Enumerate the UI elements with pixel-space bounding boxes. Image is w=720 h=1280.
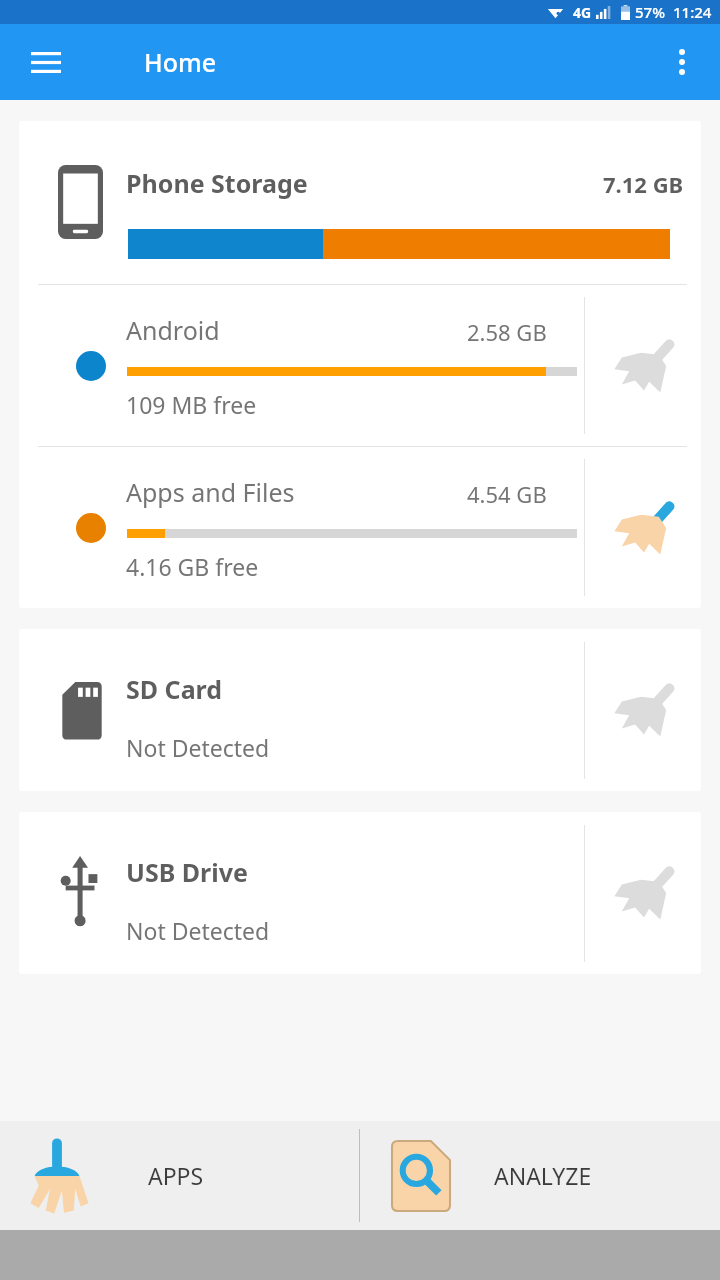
button[interactable]: Clean SD Card xyxy=(586,629,701,791)
button[interactable]: Clean Apps and Files xyxy=(586,447,701,608)
button[interactable]: APPS xyxy=(0,1121,359,1230)
staticText: USB Drive xyxy=(126,855,248,889)
staticText: 7.12 GB xyxy=(603,169,684,199)
staticText: 4G xyxy=(573,3,592,22)
staticText: APPS xyxy=(148,1160,204,1191)
staticText: 11:24 xyxy=(673,2,712,22)
staticText: 4.16 GB free xyxy=(126,551,259,582)
staticText: Not Detected xyxy=(126,732,270,763)
staticText: Home xyxy=(144,45,217,79)
staticText: 4.54 GB xyxy=(467,479,547,509)
button[interactable]: Apps and Files xyxy=(19,447,701,608)
staticText: 2.58 GB xyxy=(467,317,547,347)
staticText: SD Card xyxy=(126,672,223,706)
staticText: Not Detected xyxy=(126,915,270,946)
staticText: Phone Storage xyxy=(126,166,308,200)
staticText: 57% xyxy=(635,2,665,22)
button[interactable]: Android xyxy=(19,285,701,446)
staticText: 109 MB free xyxy=(126,389,257,420)
staticText: Android xyxy=(126,313,220,347)
button[interactable]: ANALYZE xyxy=(360,1121,720,1230)
button[interactable]: Clean Android xyxy=(586,285,701,446)
staticText: Apps and Files xyxy=(126,475,295,509)
button[interactable]: Open navigation menu xyxy=(18,34,74,90)
staticText: ANALYZE xyxy=(494,1160,592,1191)
button[interactable]: More options xyxy=(654,34,710,90)
button[interactable]: SD Card xyxy=(19,629,701,791)
button[interactable]: Clean USB Drive xyxy=(586,812,701,974)
button[interactable]: USB Drive xyxy=(19,812,701,974)
